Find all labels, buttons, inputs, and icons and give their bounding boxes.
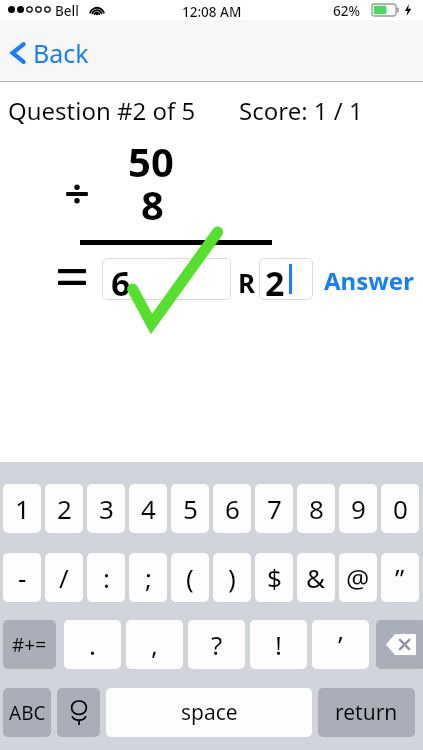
staticText: Back [33,36,89,70]
button[interactable]: ” [381,553,419,602]
button[interactable]: ; [129,553,167,602]
staticText: 2 [57,491,72,526]
staticText: @ [346,560,370,595]
staticText: 3 [99,491,114,526]
staticText: space [181,698,238,727]
staticText: Bell [55,2,79,20]
button[interactable]: ! [250,620,307,669]
staticText: Question #2 of 5 [8,94,196,127]
staticText: 50 [128,134,174,188]
staticText: return [335,698,398,727]
button[interactable]: 7 [255,484,293,533]
button[interactable]: , [126,620,183,669]
staticText: 6 [225,491,240,526]
button[interactable]: ) [213,553,251,602]
staticText: ; [145,560,152,595]
staticText: 8 [309,491,324,526]
staticText: 8 [141,177,164,231]
staticText: ’ [338,627,343,662]
button[interactable]: & [297,553,335,602]
staticText: & [306,560,326,595]
staticText: ( [186,560,194,595]
button[interactable]: 0 [381,484,419,533]
button[interactable]: space [106,688,312,737]
staticText: ” [395,560,405,595]
staticText: ABC [9,700,46,726]
button[interactable]: 8 [297,484,335,533]
button[interactable]: $ [255,553,293,602]
button[interactable]: Backspace [376,620,423,669]
button[interactable]: 9 [339,484,377,533]
button[interactable]: ’ [312,620,369,669]
button[interactable]: ? [188,620,245,669]
staticText: . [89,627,96,662]
button[interactable]: 3 [87,484,125,533]
button[interactable]: Answer [322,262,416,299]
staticText: 7 [267,491,282,526]
staticText: Score: 1 / 1 [239,94,363,127]
button[interactable]: / [45,553,83,602]
button[interactable]: 4 [129,484,167,533]
staticText: : [103,560,110,595]
staticText: 9 [351,491,366,526]
button[interactable]: . [64,620,121,669]
staticText: , [151,627,158,662]
staticText: $ [267,560,282,595]
staticText: ! [275,627,282,662]
button[interactable]: 1 [3,484,41,533]
staticText: 12:08 AM [182,3,242,21]
button[interactable]: @ [339,553,377,602]
staticText: 5 [183,491,198,526]
button[interactable]: return [318,688,415,737]
staticText: 4 [141,491,156,526]
button[interactable]: 6 [102,258,231,300]
staticText: ) [228,560,236,595]
button[interactable]: 2 [45,484,83,533]
staticText: / [59,560,69,595]
button[interactable]: ( [171,553,209,602]
staticText: 6 [111,260,131,300]
staticText: 0 [393,491,408,526]
staticText: Answer [324,264,414,297]
button[interactable]: Back [6,34,93,72]
staticText: ? [211,627,223,662]
staticText: R [238,265,256,300]
button[interactable]: Dictate [57,688,100,737]
button[interactable]: - [3,553,41,602]
staticText: 62% [333,2,360,20]
button[interactable]: 5 [171,484,209,533]
button[interactable]: : [87,553,125,602]
staticText: 2 [265,260,285,300]
staticText: 1 [15,491,30,526]
button[interactable]: 6 [213,484,251,533]
button[interactable]: #+= [3,620,56,669]
staticText: #+= [12,632,47,658]
button[interactable]: ABC [3,688,51,737]
button[interactable]: 2 [259,258,313,300]
staticText: - [18,560,27,595]
